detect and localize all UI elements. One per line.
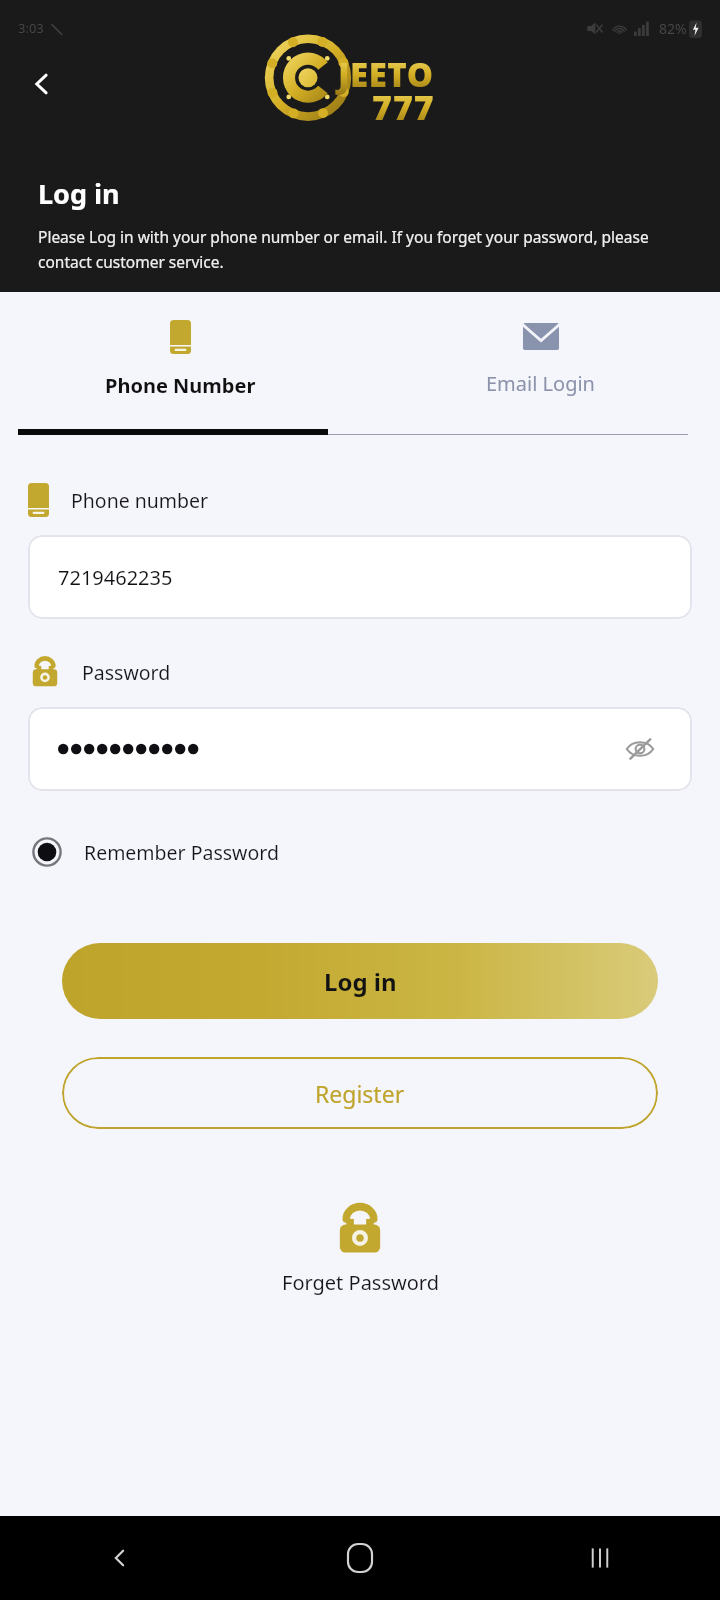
button[interactable]: Email Login (360, 292, 720, 427)
staticText: Remember Password (84, 839, 279, 866)
staticText: Password (82, 659, 171, 686)
staticText: Email Login (486, 370, 595, 397)
button[interactable]: Show password (28, 707, 692, 791)
staticText: 82% (659, 19, 687, 38)
button[interactable]: Back (0, 1516, 240, 1600)
staticText: 777 (372, 84, 435, 130)
button[interactable]: Show password (618, 727, 662, 771)
staticText: Phone Number (105, 372, 256, 399)
button[interactable]: Log in (62, 943, 658, 1019)
staticText: Forget Password (282, 1269, 439, 1296)
staticText: 7219462235 (58, 564, 173, 591)
button[interactable]: Remember Password (28, 833, 279, 871)
staticText: Phone number (71, 487, 209, 514)
staticText: JEETO (338, 52, 434, 97)
staticText: Log in (324, 965, 397, 998)
button[interactable]: 7219462235 (28, 535, 692, 619)
staticText: Register (315, 1078, 405, 1109)
staticText: Please Log in with your phone number or … (38, 226, 676, 272)
button[interactable]: Register (62, 1057, 658, 1129)
button[interactable]: Home (240, 1516, 480, 1600)
staticText: 3:03 (18, 19, 44, 37)
button[interactable]: Back (14, 56, 70, 112)
staticText: Log in (38, 175, 120, 212)
button[interactable]: Recent apps (480, 1516, 720, 1600)
button[interactable]: Phone Number (0, 292, 360, 427)
button[interactable]: Forget Password (28, 1201, 692, 1296)
